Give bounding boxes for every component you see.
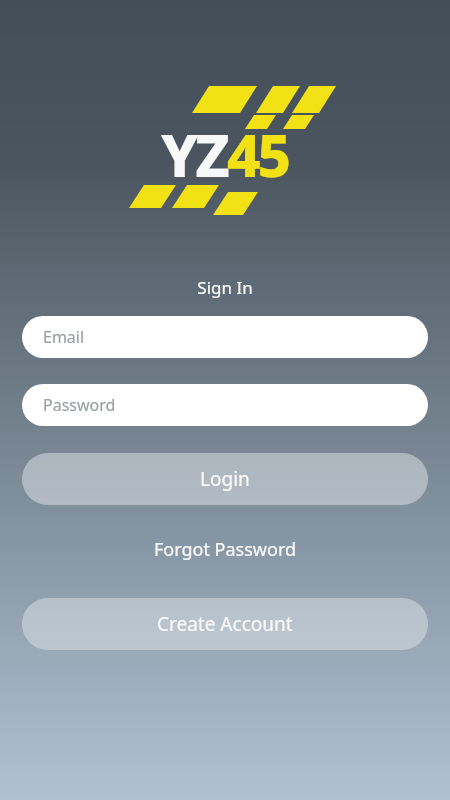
button[interactable]: Password [22, 384, 428, 426]
staticText: Create Account [157, 611, 293, 637]
staticText: Login [200, 466, 250, 492]
staticText: 45 [227, 115, 289, 194]
staticText: Forgot Password [154, 537, 297, 562]
button[interactable]: Forgot Password [142, 533, 309, 566]
staticText: Sign In [197, 276, 253, 299]
button[interactable]: Create Account [22, 598, 428, 650]
staticText: YZ [161, 115, 227, 194]
staticText: Password [43, 394, 116, 416]
staticText: Email [43, 326, 85, 348]
button[interactable]: Login [22, 453, 428, 505]
button[interactable]: Email [22, 316, 428, 358]
